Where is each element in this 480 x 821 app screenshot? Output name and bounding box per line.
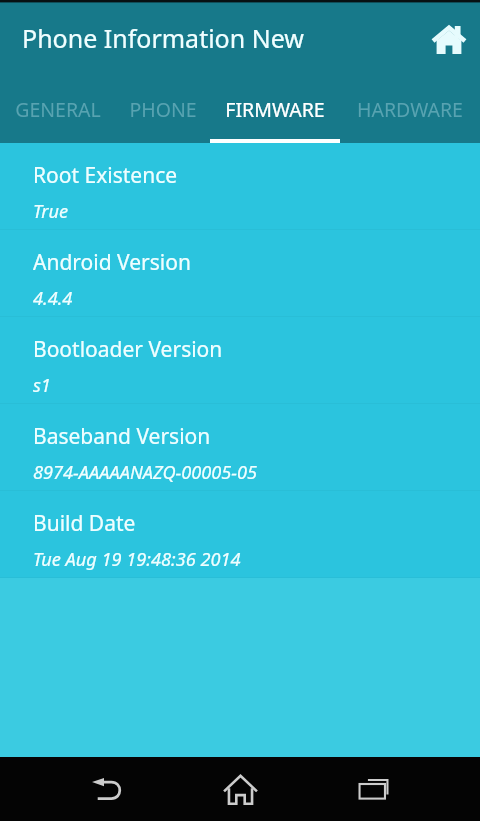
- staticText: 8974-AAAAANAZQ-00005-05: [33, 460, 258, 485]
- button[interactable]: Build Date: [0, 491, 480, 577]
- button[interactable]: PHONE: [115, 75, 210, 143]
- button[interactable]: Bootloader Version: [0, 317, 480, 403]
- button[interactable]: Recent apps: [307, 757, 440, 821]
- staticText: 4.4.4: [33, 286, 73, 311]
- staticText: PHONE: [129, 96, 197, 123]
- staticText: Root Existence: [33, 161, 178, 190]
- button[interactable]: Home: [422, 3, 480, 75]
- button[interactable]: GENERAL: [0, 75, 115, 143]
- staticText: Phone Information New: [22, 21, 422, 55]
- button[interactable]: Root Existence: [0, 143, 480, 229]
- staticText: Bootloader Version: [33, 335, 223, 364]
- staticText: GENERAL: [15, 96, 101, 123]
- staticText: FIRMWARE: [225, 96, 325, 123]
- button[interactable]: FIRMWARE: [210, 75, 340, 143]
- staticText: Baseband Version: [33, 422, 211, 451]
- staticText: HARDWARE: [357, 96, 463, 123]
- staticText: True: [33, 199, 69, 224]
- button[interactable]: HARDWARE: [340, 75, 480, 143]
- button[interactable]: Android Version: [0, 230, 480, 316]
- staticText: Build Date: [33, 509, 136, 538]
- staticText: s1: [33, 373, 51, 398]
- staticText: Android Version: [33, 248, 191, 277]
- staticText: Tue Aug 19 19:48:36 2014: [33, 547, 241, 572]
- button[interactable]: Baseband Version: [0, 404, 480, 490]
- button[interactable]: Home: [174, 757, 307, 821]
- button[interactable]: Back: [40, 757, 174, 821]
